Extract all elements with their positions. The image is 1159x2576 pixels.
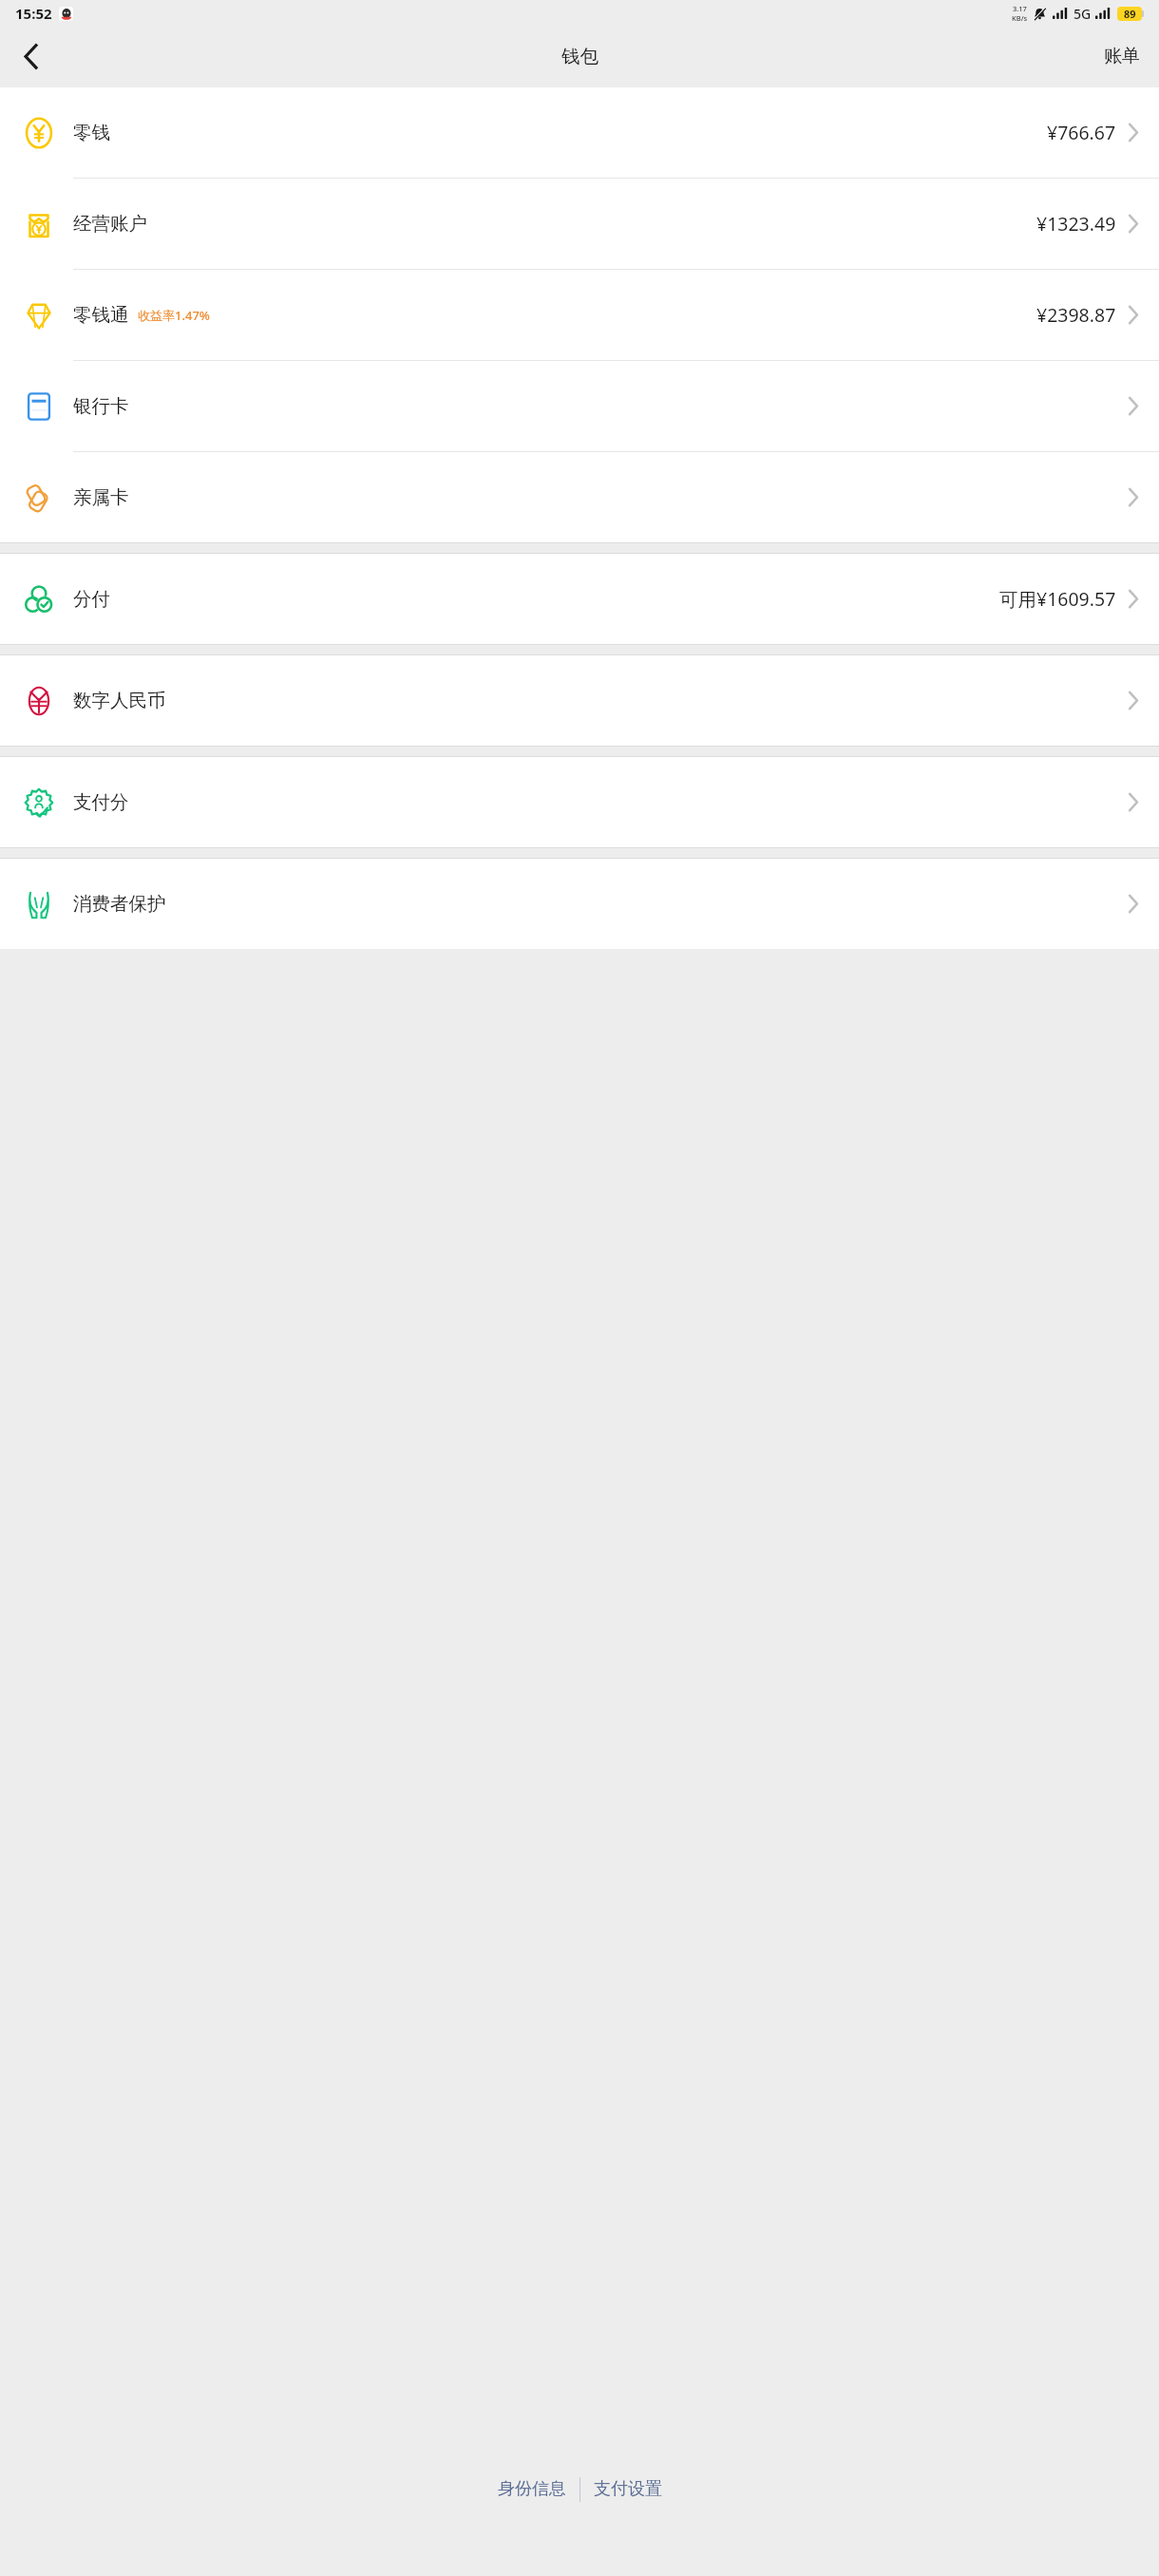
staticText: 15:52: [15, 4, 52, 23]
staticText: 银行卡: [73, 394, 129, 418]
button[interactable]: 身份信息: [484, 2469, 579, 2510]
button[interactable]: 数字人民币: [0, 655, 1159, 746]
staticText: KB/s: [1012, 13, 1028, 23]
staticText: ¥2398.87: [1036, 302, 1116, 328]
staticText: 亲属卡: [73, 485, 129, 509]
staticText: 收益率1.47%: [138, 307, 210, 324]
button[interactable]: 账单: [1096, 37, 1148, 75]
button[interactable]: 支付分: [0, 757, 1159, 847]
button[interactable]: 分付: [0, 554, 1159, 644]
staticText: 支付分: [73, 790, 129, 814]
button[interactable]: 亲属卡: [0, 452, 1159, 542]
button[interactable]: 零钱: [0, 87, 1159, 179]
staticText: 钱包: [561, 45, 598, 68]
staticText: 5G: [1073, 5, 1092, 23]
staticText: 账单: [1104, 45, 1140, 67]
staticText: 3.17: [1013, 4, 1027, 13]
staticText: ¥766.67: [1047, 120, 1116, 145]
staticText: 分付: [73, 587, 110, 611]
staticText: 支付设置: [594, 2478, 662, 2500]
button[interactable]: 经营账户: [0, 179, 1159, 270]
staticText: 经营账户: [73, 212, 147, 236]
staticText: 消费者保护: [73, 892, 166, 916]
button[interactable]: 支付设置: [580, 2469, 675, 2510]
button[interactable]: 消费者保护: [0, 859, 1159, 949]
button[interactable]: 返回: [6, 31, 55, 81]
staticText: 可用¥1609.57: [999, 586, 1116, 612]
staticText: 零钱: [73, 121, 110, 144]
staticText: 89: [1124, 7, 1136, 21]
staticText: 身份信息: [498, 2478, 566, 2500]
staticText: 零钱通: [73, 303, 129, 327]
staticText: ¥1323.49: [1036, 211, 1116, 237]
staticText: 数字人民币: [73, 689, 166, 712]
button[interactable]: 银行卡: [0, 361, 1159, 452]
button[interactable]: 零钱通: [0, 270, 1159, 361]
